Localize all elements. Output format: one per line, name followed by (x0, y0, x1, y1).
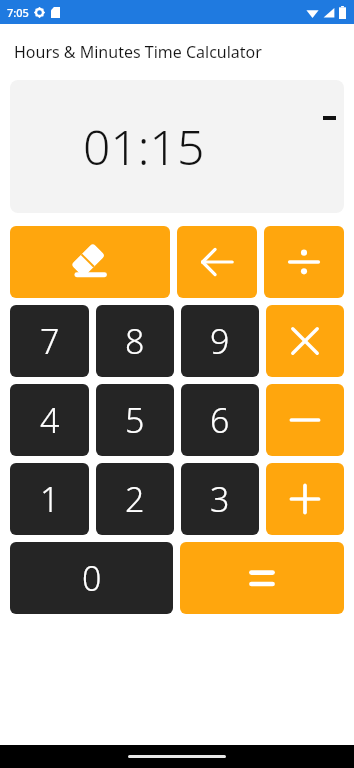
staticText: 1 (40, 476, 60, 522)
staticText: 0 (82, 555, 102, 601)
staticText: 3 (210, 476, 230, 522)
button[interactable]: Multiply (266, 305, 344, 377)
staticText: 7 (40, 318, 60, 364)
button[interactable]: 2 (96, 463, 174, 535)
button[interactable]: 9 (181, 305, 259, 377)
staticText: 01:15 (83, 114, 205, 179)
staticText: 7:05 (7, 5, 29, 20)
button[interactable]: 4 (10, 384, 89, 456)
button[interactable]: 5 (96, 384, 174, 456)
staticText: 9 (210, 318, 230, 364)
staticText: 4 (40, 397, 60, 443)
staticText: 6 (210, 397, 230, 443)
button[interactable]: Clear (10, 226, 170, 298)
staticText: 8 (125, 318, 145, 364)
button[interactable]: 6 (181, 384, 259, 456)
button[interactable]: Equals (180, 542, 344, 614)
staticText: 5 (125, 397, 145, 443)
button[interactable]: Backspace (177, 226, 257, 298)
button[interactable]: 1 (10, 463, 89, 535)
staticText: Hours & Minutes Time Calculator (14, 41, 262, 63)
button[interactable]: Divide (264, 226, 344, 298)
button[interactable]: 0 (10, 542, 173, 614)
button[interactable]: 7 (10, 305, 89, 377)
button[interactable]: Minus (266, 384, 344, 456)
button[interactable]: 8 (96, 305, 174, 377)
staticText: 2 (125, 476, 145, 522)
button[interactable]: Plus (266, 463, 344, 535)
button[interactable]: 3 (181, 463, 259, 535)
